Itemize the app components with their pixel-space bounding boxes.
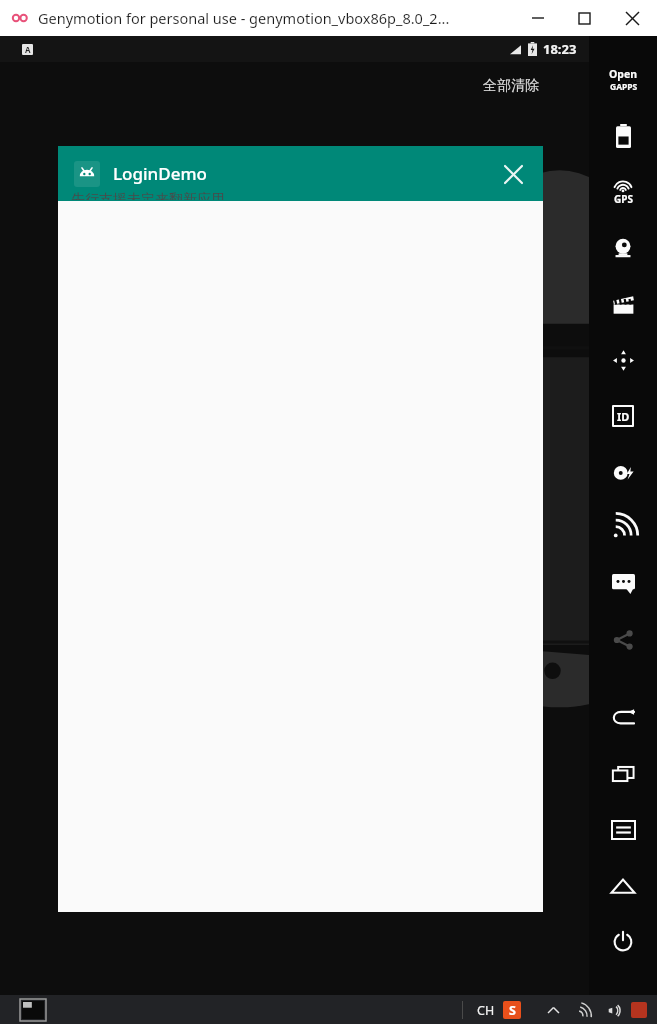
button[interactable]: Disk IO: [589, 444, 657, 500]
button[interactable]: Maximize: [561, 0, 607, 36]
button[interactable]: Screen recorder: [589, 276, 657, 332]
staticText: CH: [477, 1002, 495, 1019]
staticText: ID: [617, 409, 630, 424]
staticText: 18:23: [543, 40, 577, 58]
button[interactable]: Show hidden icons: [543, 1000, 563, 1020]
button[interactable]: Battery: [589, 108, 657, 164]
button[interactable]: Camera: [589, 220, 657, 276]
button[interactable]: Minimize: [515, 0, 561, 36]
button[interactable]: Home: [589, 858, 657, 914]
button[interactable]: Network: [573, 1000, 593, 1020]
button[interactable]: Close: [493, 154, 533, 194]
staticText: A: [25, 44, 31, 55]
staticText: 全部清除: [483, 77, 539, 95]
staticText: GPS: [614, 192, 633, 206]
button[interactable]: Power: [589, 914, 657, 970]
button[interactable]: Tray app: [631, 1002, 647, 1018]
staticText: GAPPS: [610, 81, 638, 93]
staticText: 先行支援未定来翻新应用: [71, 191, 225, 200]
button[interactable]: Sogou input: [503, 1001, 521, 1019]
button[interactable]: Share: [589, 612, 657, 668]
staticText: S: [509, 1002, 516, 1019]
button[interactable]: Accelerometer: [589, 332, 657, 388]
button[interactable]: Phone & SMS: [589, 556, 657, 612]
button[interactable]: Open GAPPS: [589, 52, 657, 108]
staticText: Genymotion for personal use - genymotion…: [38, 8, 450, 28]
staticText: LoginDemo: [113, 162, 207, 185]
staticText: Open: [609, 67, 638, 81]
button[interactable]: Volume: [603, 1000, 623, 1020]
button[interactable]: Close: [607, 0, 657, 36]
button[interactable]: 全部清除: [0, 62, 589, 110]
button[interactable]: Recents: [589, 746, 657, 802]
button[interactable]: Identifiers: [589, 388, 657, 444]
button[interactable]: Menu: [589, 802, 657, 858]
button[interactable]: Genymotion window: [20, 999, 46, 1021]
button[interactable]: GPS: [589, 164, 657, 220]
button[interactable]: Network: [589, 500, 657, 556]
button[interactable]: Back: [589, 690, 657, 746]
